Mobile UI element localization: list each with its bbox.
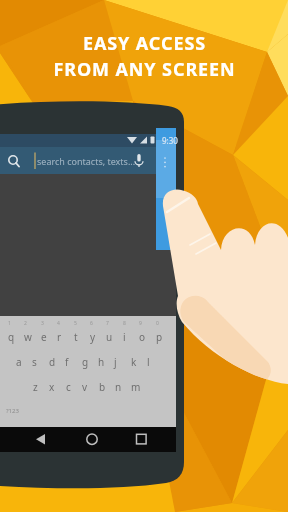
staticText: EASY ACCESS FROM ANY SCREEN [53, 31, 236, 81]
staticText: u [106, 330, 113, 344]
staticText: s [32, 355, 37, 369]
staticText: t [74, 330, 78, 344]
staticText: c [66, 380, 71, 394]
staticText: m [131, 380, 141, 394]
staticText: d [49, 355, 56, 369]
staticText: 6 [90, 320, 93, 327]
staticText: j [114, 355, 117, 369]
staticText: e [41, 330, 47, 344]
staticText: w [24, 330, 32, 344]
staticText: v [82, 380, 88, 394]
staticText: 1 [8, 320, 11, 327]
staticText: q [8, 330, 15, 344]
staticText: ?123 [6, 407, 19, 415]
staticText: x [49, 380, 55, 394]
staticText: k [131, 355, 137, 369]
staticText: 0 [156, 320, 159, 327]
staticText: n [115, 380, 122, 394]
staticText: p [156, 330, 163, 344]
staticText: g [82, 355, 89, 369]
staticText: 5 [74, 320, 77, 327]
staticText: z [33, 380, 38, 394]
staticText: 9 [139, 320, 142, 327]
staticText: f [65, 355, 69, 369]
staticText: r [57, 330, 62, 344]
staticText: 2 [24, 320, 27, 327]
staticText: b [99, 380, 106, 394]
staticText: i [123, 330, 126, 344]
staticText: y [90, 330, 96, 344]
staticText: a [16, 355, 22, 369]
staticText: l [147, 355, 150, 369]
staticText: 3 [41, 320, 44, 327]
staticText: h [98, 355, 105, 369]
staticText: 8 [123, 320, 126, 327]
staticText: search contacts, texts... [37, 155, 136, 167]
staticText: 4 [57, 320, 60, 327]
staticText: o [139, 330, 146, 344]
staticText: 7 [106, 320, 109, 327]
staticText: 9:30 [162, 135, 178, 146]
